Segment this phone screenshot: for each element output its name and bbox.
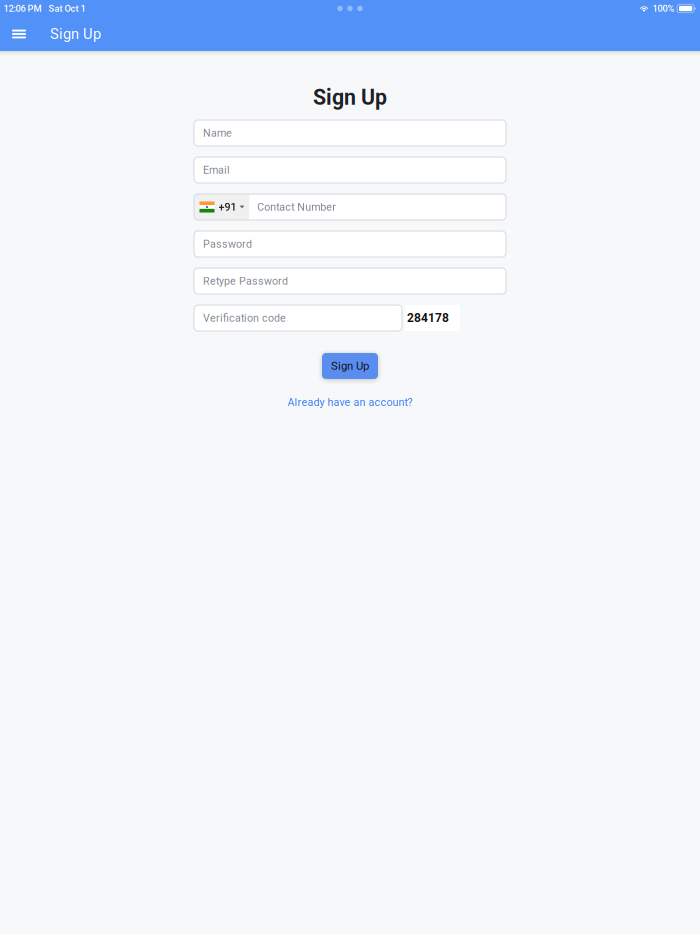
staticText: Verification code [203, 312, 286, 324]
button[interactable]: Sign Up [322, 353, 378, 379]
staticText: Password [203, 238, 252, 250]
staticText: +91 [218, 201, 236, 213]
staticText: 12:06 PM [3, 3, 41, 14]
button[interactable]: Menu [6, 17, 32, 51]
staticText: Email [203, 164, 230, 176]
staticText: Already have an account? [287, 396, 412, 408]
button[interactable]: Country code +91 [194, 194, 249, 220]
button[interactable]: Already have an account? [281, 390, 418, 414]
staticText: Retype Password [203, 275, 288, 287]
staticText: Name [203, 127, 232, 139]
staticText: 100% [653, 3, 675, 14]
staticText: Sign Up [313, 85, 387, 110]
staticText: Contact Number [257, 201, 336, 213]
staticText: Sign Up [331, 359, 369, 373]
staticText: Sat Oct 1 [48, 3, 85, 14]
staticText: Sign Up [50, 25, 101, 43]
staticText: 284178 [407, 311, 449, 325]
